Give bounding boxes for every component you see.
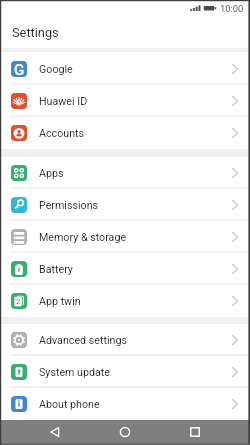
staticText: System update — [39, 366, 111, 379]
staticText: Permissions — [39, 199, 99, 212]
button[interactable]: Memory & storage — [0, 221, 250, 253]
button[interactable]: Permissions — [0, 189, 250, 221]
staticText: Settings — [12, 25, 59, 40]
staticText: 10:00 — [220, 3, 244, 14]
button[interactable]: Accounts — [0, 117, 250, 149]
staticText: Battery — [39, 263, 73, 276]
staticText: Advanced settings — [39, 334, 127, 347]
staticText: Accounts — [39, 127, 85, 140]
staticText: G — [14, 61, 25, 77]
button[interactable]: Advanced settings — [0, 324, 250, 356]
staticText: Huawei ID — [39, 95, 88, 108]
staticText: Memory & storage — [39, 231, 127, 244]
button[interactable]: Battery — [0, 253, 250, 285]
button[interactable]: About phone — [0, 388, 250, 420]
staticText: 2 — [16, 297, 21, 306]
button[interactable]: System update — [0, 356, 250, 388]
staticText: About phone — [39, 398, 100, 411]
button[interactable]: Back — [42, 419, 68, 444]
button[interactable]: Home — [112, 419, 138, 444]
staticText: Apps — [39, 167, 64, 180]
button[interactable]: 2 — [0, 285, 250, 317]
button[interactable]: Apps — [0, 157, 250, 189]
button[interactable]: Huawei ID — [0, 85, 250, 117]
staticText: App twin — [39, 295, 81, 308]
button[interactable]: Recents — [182, 419, 208, 444]
button[interactable]: G — [0, 53, 250, 85]
staticText: Google — [39, 63, 73, 76]
